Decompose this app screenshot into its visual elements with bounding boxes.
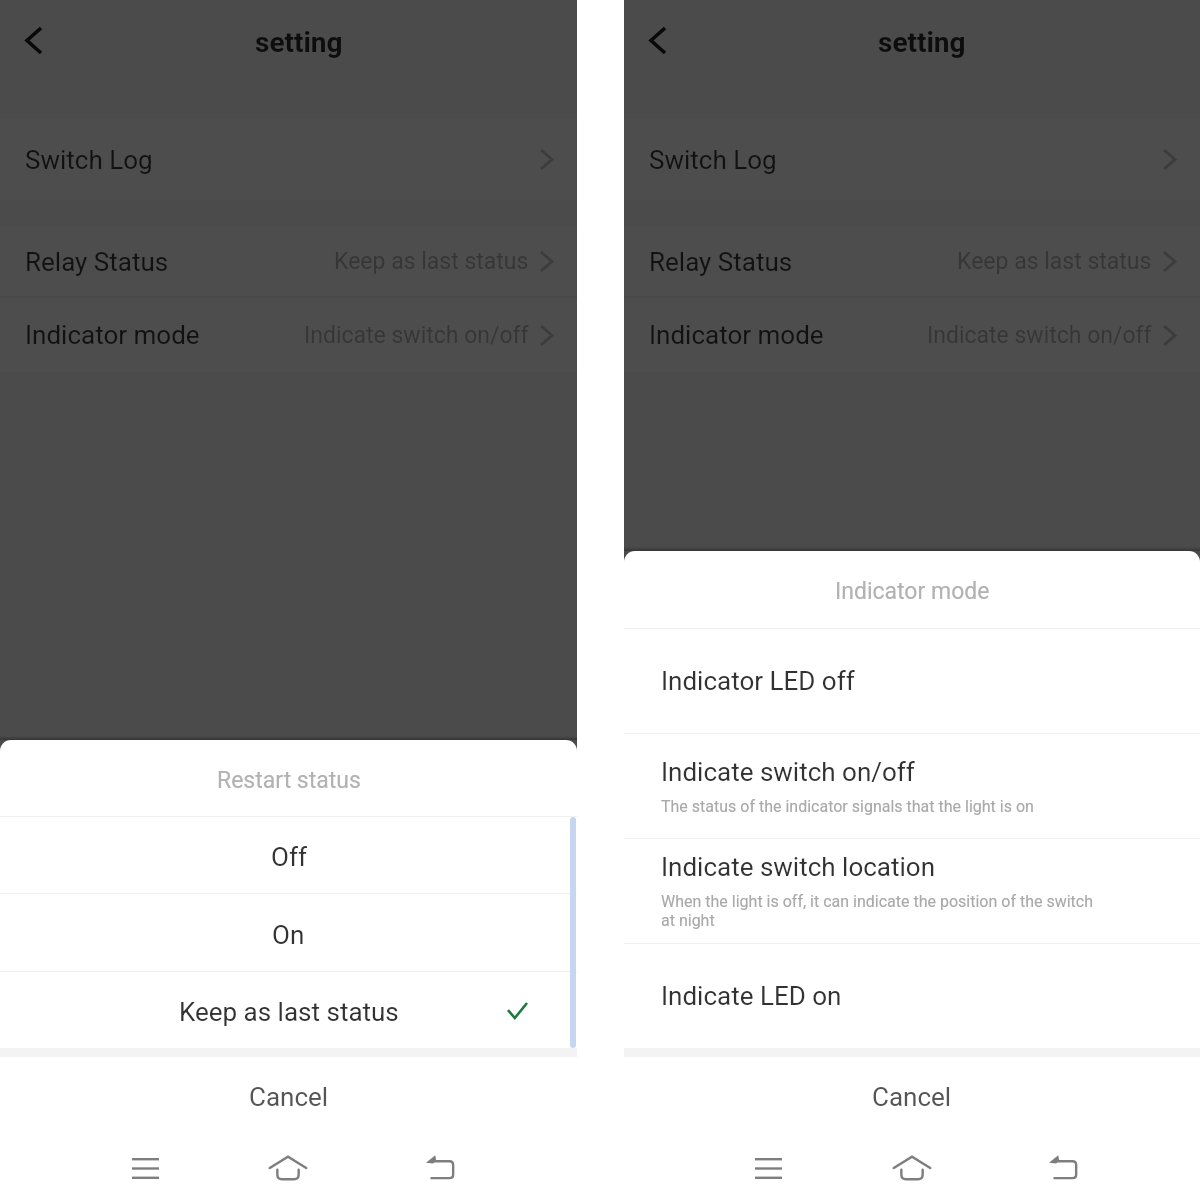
button[interactable]: Indicator mode — [624, 298, 1200, 372]
button[interactable]: Off — [0, 817, 577, 893]
button[interactable]: Cancel — [624, 1057, 1200, 1132]
staticText: Cancel — [249, 1082, 329, 1112]
staticText: Keep as last status — [957, 248, 1152, 275]
staticText: Off — [271, 842, 307, 872]
button[interactable]: Indicate switch location — [624, 839, 1200, 943]
button[interactable]: Recent apps — [97, 1132, 193, 1200]
staticText: Relay Status — [649, 247, 793, 277]
staticText: Switch Log — [25, 145, 153, 175]
staticText: Indicate LED on — [661, 981, 842, 1011]
staticText: setting — [255, 26, 343, 59]
staticText: setting — [878, 26, 966, 59]
staticText: Indicator mode — [835, 578, 990, 605]
button[interactable]: Back — [392, 1132, 488, 1200]
button[interactable]: Switch Log — [624, 119, 1200, 200]
button[interactable]: Cancel — [0, 1057, 577, 1132]
button[interactable]: Indicator mode — [0, 298, 577, 372]
staticText: On — [272, 920, 305, 950]
button[interactable]: Back — [634, 18, 682, 66]
staticText: Keep as last status — [334, 248, 529, 275]
staticText: Indicator mode — [25, 320, 200, 350]
staticText: Indicator LED off — [661, 666, 855, 696]
button[interactable]: Recent apps — [720, 1132, 816, 1200]
staticText: When the light is off, it can indicate t… — [661, 892, 1096, 930]
staticText: Switch Log — [649, 145, 777, 175]
staticText: Indicate switch location — [661, 852, 935, 882]
staticText: Cancel — [872, 1082, 952, 1112]
button[interactable]: Indicate switch on/off — [624, 734, 1200, 838]
button[interactable]: Back — [10, 18, 58, 66]
staticText: Indicate switch on/off — [661, 757, 915, 787]
button[interactable]: Keep as last status — [0, 972, 577, 1048]
button[interactable]: On — [0, 894, 577, 971]
button[interactable]: Switch Log — [0, 119, 577, 200]
staticText: Restart status — [217, 767, 361, 794]
button[interactable]: Back — [1015, 1132, 1111, 1200]
staticText: The status of the indicator signals that… — [661, 797, 1034, 816]
staticText: Indicator mode — [649, 320, 824, 350]
staticText: Relay Status — [25, 247, 169, 277]
button[interactable]: Relay Status — [0, 227, 577, 296]
staticText: Indicate switch on/off — [927, 322, 1152, 349]
button[interactable]: Indicator LED off — [624, 629, 1200, 733]
button[interactable]: Home — [864, 1132, 960, 1200]
staticText: Indicate switch on/off — [304, 322, 529, 349]
button[interactable]: Indicate LED on — [624, 944, 1200, 1048]
button[interactable]: Home — [240, 1132, 336, 1200]
staticText: Keep as last status — [179, 997, 399, 1027]
button[interactable]: Relay Status — [624, 227, 1200, 296]
